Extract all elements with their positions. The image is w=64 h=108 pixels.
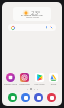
- button[interactable]: Drive: [47, 73, 60, 86]
- button[interactable]: Play Store: [33, 73, 46, 86]
- staticText: Mostly cloudy: [26, 16, 39, 19]
- staticText: Instagram: [18, 83, 31, 86]
- staticText: Drive: [47, 83, 60, 86]
- button[interactable]: Phone: [8, 93, 17, 102]
- staticText: 23°: [31, 9, 41, 17]
- button[interactable]: 23°: [13, 7, 51, 21]
- staticText: Galaxy Store: [4, 83, 17, 86]
- button[interactable]: Gmail: [47, 93, 56, 102]
- other: Voice search: [45, 26, 48, 29]
- other: Google Lens: [50, 26, 53, 29]
- other: Google Search: [11, 26, 15, 30]
- button[interactable]: Messages: [21, 93, 30, 102]
- button[interactable]: Instagram: [18, 73, 31, 86]
- button[interactable]: Internet: [34, 93, 43, 102]
- staticText: El Nuevo Tarek City: [21, 13, 43, 16]
- button[interactable]: Google Search: [8, 24, 56, 31]
- staticText: Play Store: [33, 83, 46, 86]
- button[interactable]: Galaxy Store: [4, 73, 17, 86]
